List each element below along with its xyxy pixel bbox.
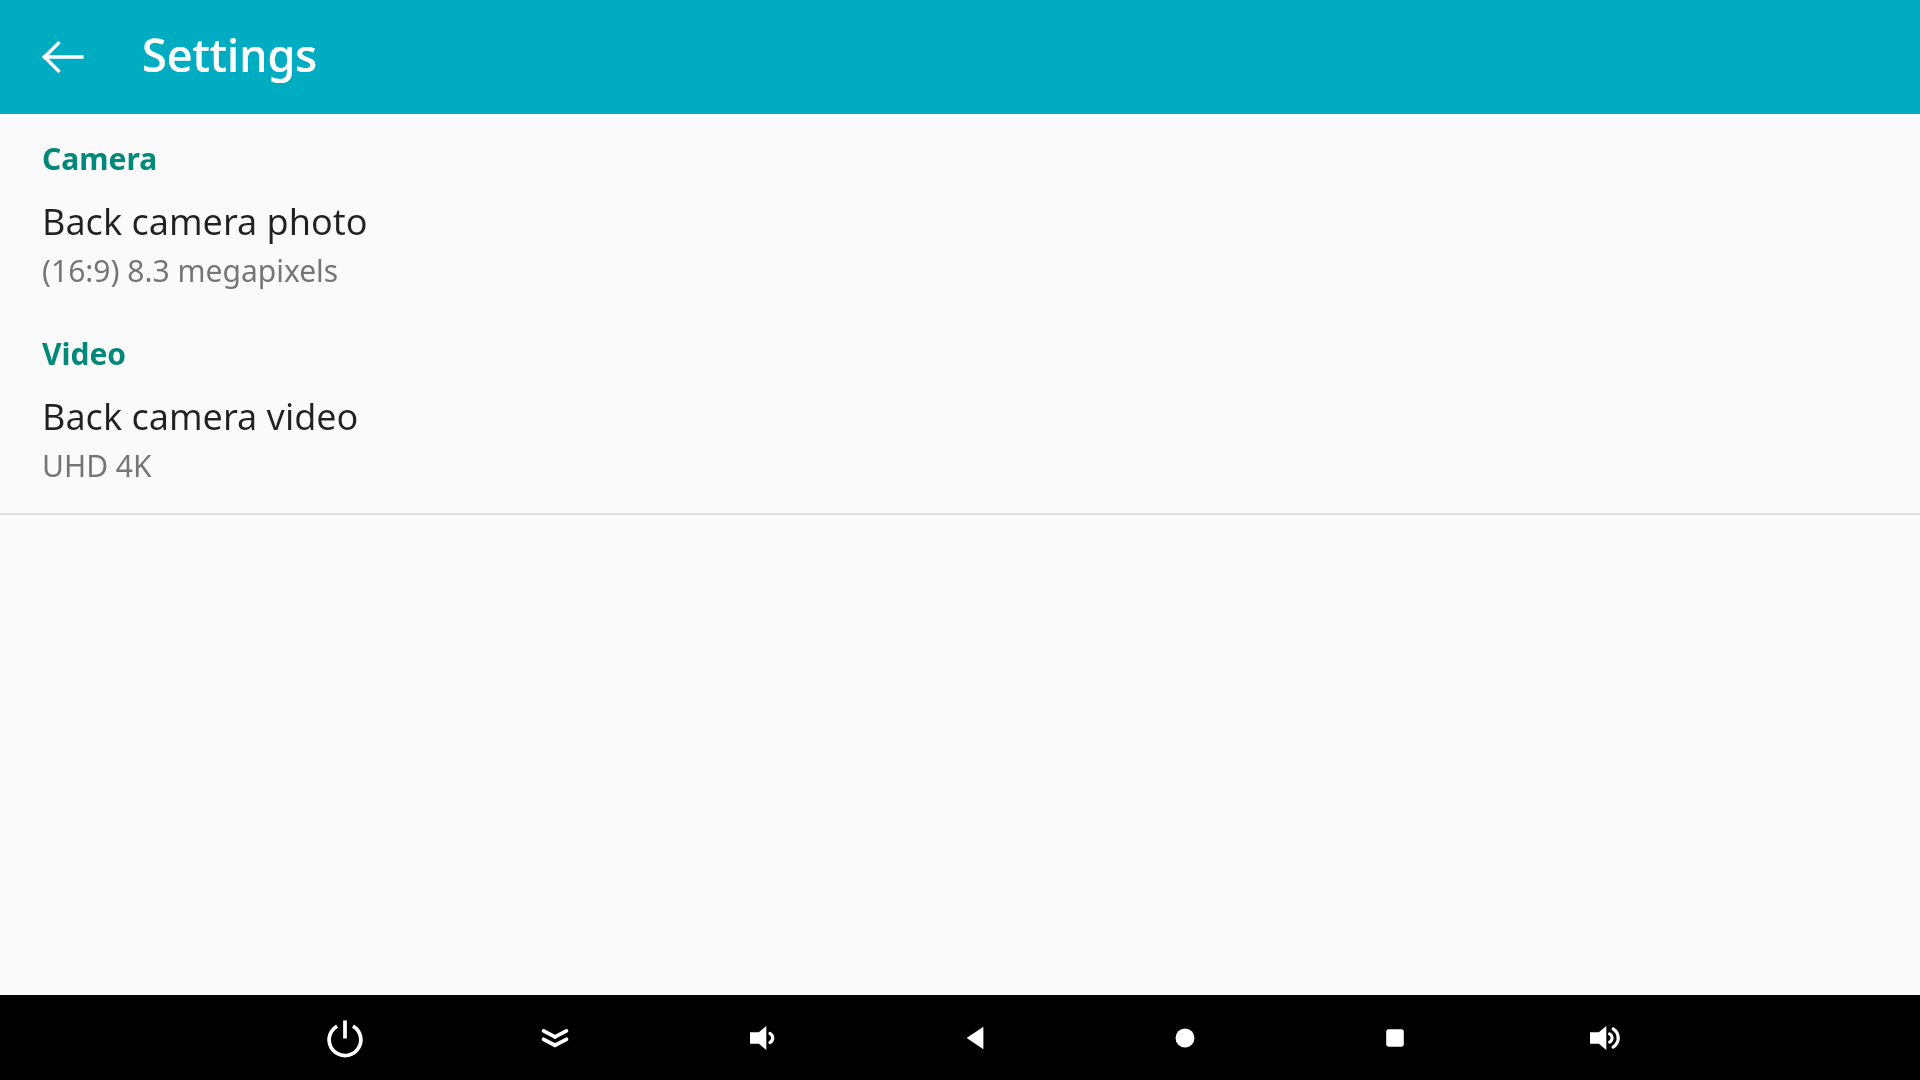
staticText: Back camera photo xyxy=(42,197,368,246)
button[interactable]: Back camera photo xyxy=(0,197,1920,291)
staticText: Back camera video xyxy=(42,392,359,441)
button[interactable]: Volume up xyxy=(1500,995,1710,1080)
button[interactable]: Volume down xyxy=(660,995,870,1080)
button[interactable]: Back xyxy=(870,995,1080,1080)
staticText: Camera xyxy=(42,138,158,179)
button[interactable]: Back xyxy=(15,9,111,105)
button[interactable]: Back camera video xyxy=(0,392,1920,486)
button[interactable]: Power xyxy=(240,995,450,1080)
staticText: UHD 4K xyxy=(42,445,152,486)
staticText: Settings xyxy=(142,24,318,85)
button[interactable]: Collapse xyxy=(450,995,660,1080)
staticText: Video xyxy=(42,333,127,374)
staticText: (16:9) 8.3 megapixels xyxy=(42,250,339,291)
button[interactable]: Recents xyxy=(1290,995,1500,1080)
button[interactable]: Home xyxy=(1080,995,1290,1080)
